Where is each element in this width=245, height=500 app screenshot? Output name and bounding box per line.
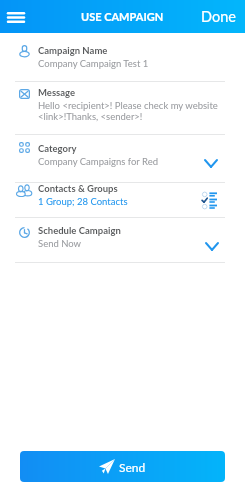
staticText: Done (201, 8, 236, 25)
button[interactable]: Category (0, 134, 245, 182)
button[interactable]: Open navigation menu (1, 2, 31, 32)
staticText: Send Now (38, 238, 82, 249)
staticText: Schedule Campaign (38, 225, 121, 236)
button[interactable]: Done (193, 2, 245, 31)
button[interactable]: Schedule Campaign (0, 217, 245, 261)
staticText: USE CAMPAIGN (81, 10, 164, 23)
button[interactable]: Select contacts (198, 188, 220, 210)
button[interactable]: Expand (200, 152, 222, 174)
staticText: Contacts & Groups (38, 183, 118, 194)
staticText: <link>!Thanks, <sender>! (38, 111, 143, 122)
staticText: Campaign Name (38, 45, 108, 56)
button[interactable]: Contacts & Groups (0, 182, 245, 217)
staticText: 1 Group; 28 Contacts (38, 196, 128, 207)
button[interactable]: Campaign Name (0, 33, 245, 81)
button[interactable]: Expand (201, 235, 223, 257)
staticText: Company Campaign Test 1 (38, 58, 149, 69)
button[interactable]: Send (20, 451, 225, 482)
staticText: Message (38, 87, 76, 98)
staticText: Send (119, 460, 146, 474)
staticText: Category (38, 143, 77, 154)
button[interactable]: Message (0, 81, 245, 134)
staticText: Hello <recipient>! Please check my websi… (38, 100, 218, 111)
staticText: Company Campaigns for Red (38, 156, 158, 167)
